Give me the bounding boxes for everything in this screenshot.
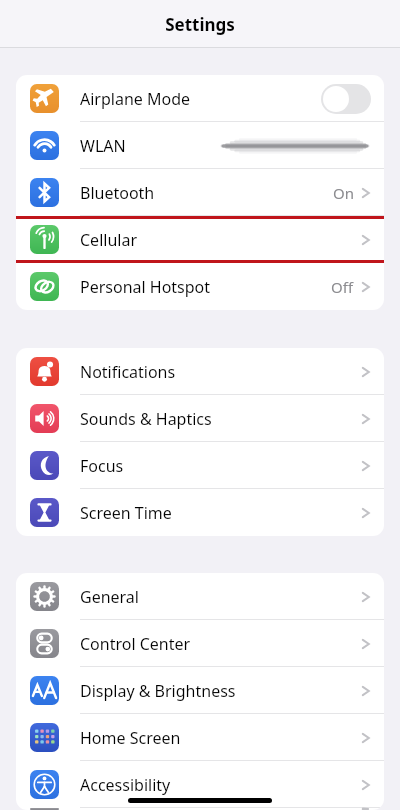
- staticText: On: [333, 183, 354, 203]
- button[interactable]: Sounds & Haptics: [16, 395, 384, 442]
- staticText: Cellular: [80, 229, 137, 251]
- staticText: Off: [331, 277, 354, 297]
- staticText: Accessibility: [80, 774, 171, 796]
- button[interactable]: Airplane Mode: [16, 75, 384, 122]
- staticText: Focus: [80, 455, 124, 477]
- staticText: WLAN: [80, 135, 126, 157]
- button[interactable]: WLAN: [16, 122, 384, 169]
- button[interactable]: Screen Time: [16, 489, 384, 536]
- staticText: Personal Hotspot: [80, 276, 211, 298]
- button[interactable]: Focus: [16, 442, 384, 489]
- staticText: Display & Brightness: [80, 680, 236, 702]
- staticText: Home Screen: [80, 727, 181, 749]
- button[interactable]: Bluetooth: [16, 169, 384, 216]
- staticText: Screen Time: [80, 502, 172, 524]
- button[interactable]: Personal Hotspot: [16, 263, 384, 310]
- button[interactable]: Airplane Mode: [321, 84, 371, 114]
- button[interactable]: Cellular: [16, 216, 384, 263]
- staticText: Control Center: [80, 633, 191, 655]
- staticText: Settings: [165, 13, 235, 36]
- staticText: General: [80, 586, 139, 608]
- staticText: Sounds & Haptics: [80, 408, 212, 430]
- staticText: Notifications: [80, 361, 176, 383]
- staticText: Bluetooth: [80, 182, 155, 204]
- button[interactable]: Control Center: [16, 620, 384, 667]
- button[interactable]: Home Screen: [16, 714, 384, 761]
- button[interactable]: Accessibility: [16, 761, 384, 808]
- staticText: Airplane Mode: [80, 88, 191, 110]
- button[interactable]: Siri & Search: [16, 808, 384, 810]
- button[interactable]: Display & Brightness: [16, 667, 384, 714]
- button[interactable]: Notifications: [16, 348, 384, 395]
- button[interactable]: General: [16, 573, 384, 620]
